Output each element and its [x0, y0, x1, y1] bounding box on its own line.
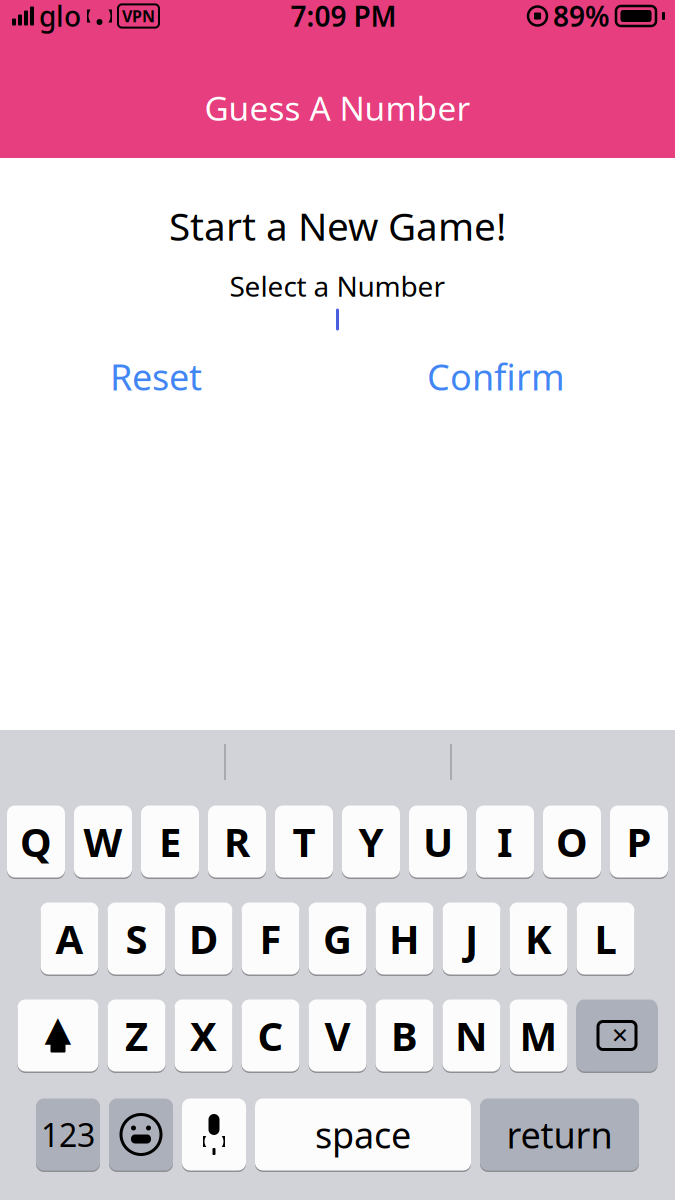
- button[interactable]: Emoji: [109, 1097, 173, 1172]
- staticText: K: [525, 912, 552, 965]
- staticText: M: [519, 1009, 557, 1062]
- button[interactable]: A: [40, 901, 98, 976]
- staticText: D: [189, 912, 218, 965]
- button[interactable]: P: [610, 804, 668, 879]
- button[interactable]: return: [480, 1097, 639, 1172]
- staticText: Reset: [110, 352, 202, 400]
- button[interactable]: Shift: [17, 998, 98, 1073]
- button[interactable]: Dictation: [182, 1097, 246, 1172]
- button[interactable]: Q: [7, 804, 65, 879]
- staticText: 89%: [553, 0, 610, 35]
- staticText: Z: [125, 1009, 148, 1062]
- button[interactable]: 123: [36, 1097, 100, 1172]
- staticText: 7:09 PM: [290, 0, 396, 35]
- staticText: ✕: [611, 1023, 629, 1048]
- staticText: Q: [20, 815, 52, 868]
- button[interactable]: I: [476, 804, 534, 879]
- button[interactable]: V: [308, 998, 366, 1073]
- button[interactable]: Reset: [96, 344, 216, 408]
- staticText: T: [292, 815, 315, 868]
- staticText: L: [594, 912, 616, 965]
- staticText: X: [190, 1009, 217, 1062]
- staticText: Confirm: [427, 352, 565, 400]
- staticText: Start a New Game!: [169, 200, 506, 251]
- staticText: E: [159, 815, 181, 868]
- staticText: I: [497, 815, 513, 868]
- button[interactable]: F: [241, 901, 299, 976]
- staticText: Select a Number: [229, 267, 445, 304]
- staticText: U: [423, 815, 453, 868]
- button[interactable]: L: [576, 901, 634, 976]
- button[interactable]: S: [107, 901, 165, 976]
- button[interactable]: D: [174, 901, 232, 976]
- button[interactable]: X: [174, 998, 232, 1073]
- staticText: ▲: [44, 1009, 71, 1048]
- button[interactable]: O: [543, 804, 601, 879]
- button[interactable]: H: [375, 901, 433, 976]
- staticText: Y: [358, 815, 383, 868]
- staticText: W: [83, 815, 122, 868]
- button[interactable]: M: [509, 998, 567, 1073]
- button[interactable]: E: [141, 804, 199, 879]
- button[interactable]: C: [241, 998, 299, 1073]
- button[interactable]: W: [74, 804, 132, 879]
- staticText: S: [125, 912, 147, 965]
- staticText: R: [224, 815, 250, 868]
- button[interactable]: N: [442, 998, 500, 1073]
- staticText: J: [465, 912, 478, 965]
- button[interactable]: space: [255, 1097, 471, 1172]
- button[interactable]: T: [275, 804, 333, 879]
- button[interactable]: Delete: [576, 998, 657, 1073]
- staticText: H: [389, 912, 420, 965]
- button[interactable]: R: [208, 804, 266, 879]
- staticText: P: [626, 815, 651, 868]
- staticText: G: [323, 912, 352, 965]
- button[interactable]: Z: [107, 998, 165, 1073]
- staticText: glo: [39, 0, 81, 35]
- staticText: A: [55, 912, 83, 965]
- button[interactable]: J: [442, 901, 500, 976]
- button[interactable]: Y: [342, 804, 400, 879]
- staticText: space: [315, 1111, 411, 1158]
- staticText: F: [259, 912, 281, 965]
- staticText: B: [391, 1009, 418, 1062]
- staticText: N: [455, 1009, 488, 1062]
- staticText: Guess A Number: [204, 86, 470, 130]
- button[interactable]: U: [409, 804, 467, 879]
- button[interactable]: K: [509, 901, 567, 976]
- button[interactable]: G: [308, 901, 366, 976]
- button[interactable]: B: [375, 998, 433, 1073]
- staticText: VPN: [122, 5, 155, 27]
- staticText: O: [556, 815, 588, 868]
- staticText: return: [506, 1111, 612, 1158]
- staticText: 123: [41, 1113, 95, 1156]
- staticText: C: [257, 1009, 283, 1062]
- button[interactable]: Confirm: [413, 344, 579, 408]
- staticText: V: [324, 1009, 350, 1062]
